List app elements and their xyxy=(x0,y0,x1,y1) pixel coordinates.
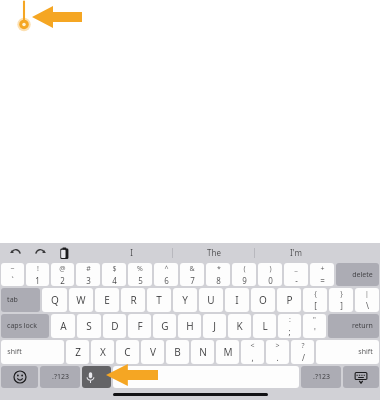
other: Hide keyboard xyxy=(354,370,368,384)
button[interactable]: " xyxy=(303,314,326,338)
button[interactable]: tab xyxy=(1,288,40,312)
staticText: 4 xyxy=(112,275,117,286)
button[interactable]: _ xyxy=(284,263,308,286)
button[interactable]: < xyxy=(241,340,264,364)
staticText: & xyxy=(189,264,195,274)
button[interactable]: I xyxy=(225,288,249,312)
button[interactable]: ^ xyxy=(154,263,178,286)
button[interactable]: * xyxy=(206,263,230,286)
button[interactable]: @ xyxy=(51,263,74,286)
button[interactable] xyxy=(113,366,299,388)
staticText: Q xyxy=(51,293,59,307)
staticText: T xyxy=(156,293,162,307)
button[interactable]: $ xyxy=(102,263,126,286)
staticText: 2 xyxy=(60,275,65,286)
button[interactable]: T xyxy=(147,288,171,312)
staticText: @ xyxy=(59,264,66,274)
button[interactable]: return xyxy=(328,314,379,338)
staticText: I'm xyxy=(290,247,302,258)
button[interactable]: Redo xyxy=(31,244,49,262)
button[interactable]: I xyxy=(91,243,172,262)
staticText: > xyxy=(275,341,280,351)
staticText: B xyxy=(174,345,181,359)
button[interactable]: : xyxy=(278,314,301,338)
staticText: ? xyxy=(301,341,305,351)
button[interactable]: K xyxy=(228,314,251,338)
button[interactable]: C xyxy=(116,340,139,364)
button[interactable]: G xyxy=(153,314,176,338)
button[interactable]: > xyxy=(266,340,289,364)
button[interactable]: shift xyxy=(1,340,64,364)
button[interactable]: ~ xyxy=(1,263,24,286)
staticText: shift xyxy=(7,347,22,357)
button[interactable]: Hide keyboard xyxy=(343,366,379,388)
button[interactable]: .?123 xyxy=(301,366,341,388)
button[interactable]: N xyxy=(191,340,214,364)
button[interactable]: % xyxy=(128,263,152,286)
button[interactable]: { xyxy=(303,288,327,312)
button[interactable]: Z xyxy=(66,340,89,364)
button[interactable]: E xyxy=(95,288,119,312)
button[interactable]: # xyxy=(76,263,100,286)
staticText: * xyxy=(217,264,221,274)
staticText: 6 xyxy=(164,275,169,286)
staticText: < xyxy=(250,341,255,351)
staticText: 5 xyxy=(138,275,143,286)
staticText: tab xyxy=(7,295,18,305)
button[interactable]: D xyxy=(103,314,126,338)
button[interactable]: Voice input xyxy=(82,366,111,388)
staticText: K xyxy=(236,319,243,333)
button[interactable]: shift xyxy=(316,340,379,364)
staticText: \ xyxy=(366,300,369,311)
staticText: 9 xyxy=(242,275,247,286)
button[interactable]: .?123 xyxy=(40,366,80,388)
button[interactable]: delete xyxy=(336,263,379,286)
button[interactable]: | xyxy=(355,288,379,312)
button[interactable]: ) xyxy=(258,263,282,286)
staticText: } xyxy=(340,289,343,299)
button[interactable]: Undo xyxy=(7,244,25,262)
staticText: W xyxy=(76,293,86,307)
staticText: / xyxy=(302,352,305,363)
staticText: I xyxy=(235,293,239,307)
button[interactable]: Paste xyxy=(55,244,73,262)
staticText: I xyxy=(130,247,133,258)
button[interactable]: L xyxy=(253,314,276,338)
button[interactable]: The xyxy=(173,243,254,262)
button[interactable]: I'm xyxy=(255,243,336,262)
button[interactable]: ? xyxy=(291,340,314,364)
button[interactable]: U xyxy=(199,288,223,312)
staticText: shift xyxy=(358,347,373,357)
button[interactable]: S xyxy=(77,314,101,338)
button[interactable]: X xyxy=(91,340,114,364)
staticText: . xyxy=(276,352,279,363)
button[interactable]: M xyxy=(216,340,239,364)
button[interactable]: Emoji xyxy=(1,366,38,388)
button[interactable]: W xyxy=(69,288,93,312)
staticText: E xyxy=(104,293,110,307)
button[interactable]: A xyxy=(51,314,75,338)
button[interactable]: Q xyxy=(42,288,67,312)
staticText: ; xyxy=(288,326,291,337)
staticText: Y xyxy=(182,293,188,307)
staticText: return xyxy=(352,321,373,331)
staticText: ~ xyxy=(10,264,15,274)
button[interactable]: V xyxy=(141,340,164,364)
button[interactable]: caps lock xyxy=(1,314,49,338)
button[interactable]: & xyxy=(180,263,204,286)
button[interactable]: ( xyxy=(232,263,256,286)
staticText: G xyxy=(161,319,169,333)
button[interactable]: R xyxy=(121,288,145,312)
button[interactable]: } xyxy=(329,288,353,312)
staticText: U xyxy=(207,293,215,307)
staticText: { xyxy=(314,289,317,299)
button[interactable]: J xyxy=(203,314,226,338)
button[interactable]: B xyxy=(166,340,189,364)
button[interactable]: P xyxy=(277,288,301,312)
button[interactable]: O xyxy=(251,288,275,312)
button[interactable]: Y xyxy=(173,288,197,312)
button[interactable]: H xyxy=(178,314,201,338)
button[interactable]: + xyxy=(310,263,334,286)
button[interactable]: F xyxy=(128,314,151,338)
button[interactable]: ! xyxy=(26,263,49,286)
